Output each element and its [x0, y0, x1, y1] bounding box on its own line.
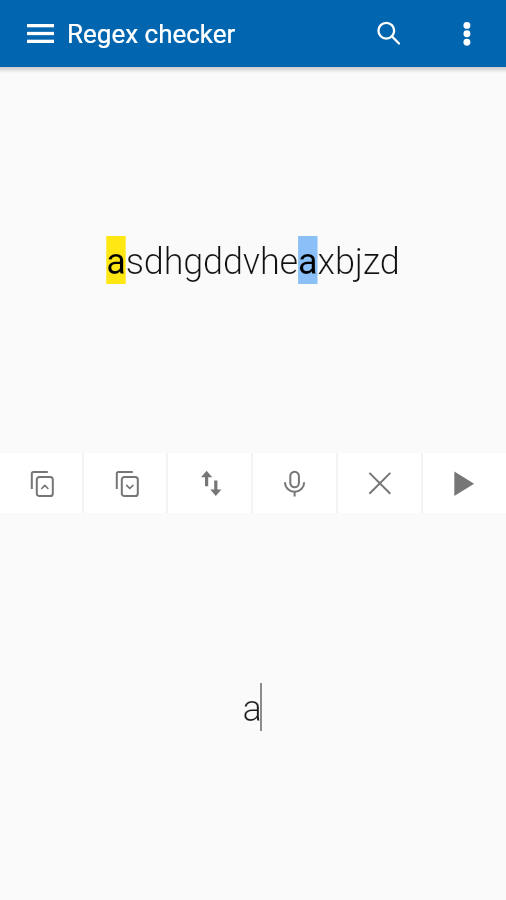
button[interactable]: More options [437, 0, 497, 67]
staticText: Regex checker [67, 19, 236, 49]
button[interactable]: Run [422, 453, 506, 513]
button[interactable]: Clear [338, 453, 422, 513]
button[interactable]: Open navigation drawer [6, 0, 74, 67]
button[interactable]: Swap fields [170, 453, 254, 513]
staticText: asdhgddvheaxbjzd [106, 236, 400, 284]
button[interactable]: Voice input [254, 453, 338, 513]
staticText: a [242, 683, 262, 731]
button[interactable]: Search [354, 0, 421, 67]
button[interactable]: Paste from clipboard [85, 453, 170, 513]
button[interactable]: Copy to clipboard [0, 453, 85, 513]
